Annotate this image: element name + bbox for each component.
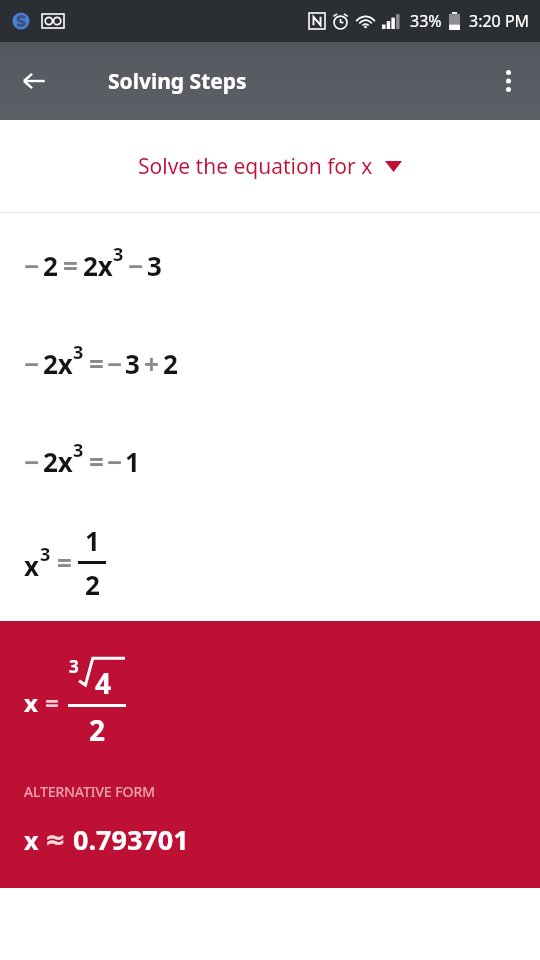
staticText: 3 xyxy=(147,248,162,283)
staticText: 2 xyxy=(163,346,178,381)
staticText: 3 xyxy=(73,340,84,365)
staticText: 3 xyxy=(40,542,51,567)
button[interactable]: Back xyxy=(6,53,62,109)
button[interactable]: More options xyxy=(480,53,536,109)
staticText: 2 xyxy=(85,567,100,602)
staticText: 2x xyxy=(43,346,73,381)
staticText: ≈ xyxy=(45,825,66,854)
staticText: = xyxy=(57,545,72,580)
staticText: Solve the equation for x xyxy=(138,152,373,181)
staticText: x xyxy=(24,686,38,719)
staticText: 3 xyxy=(125,346,140,381)
staticText: + xyxy=(144,346,159,381)
staticText: x xyxy=(24,548,40,583)
staticText: − xyxy=(107,444,123,479)
staticText: = xyxy=(45,686,59,719)
staticText: 2x xyxy=(83,248,113,283)
staticText: Solving Steps xyxy=(108,67,247,96)
staticText: ALTERNATIVE FORM xyxy=(24,782,155,801)
staticText: − xyxy=(24,444,40,479)
staticText: 3:20 PM xyxy=(469,10,530,32)
staticText: 3 xyxy=(69,655,79,678)
staticText: − xyxy=(128,248,144,283)
staticText: − xyxy=(24,248,40,283)
staticText: 1 xyxy=(125,444,140,479)
staticText: = xyxy=(63,248,78,283)
staticText: x xyxy=(24,823,39,857)
staticText: = xyxy=(89,444,104,479)
staticText: 4 xyxy=(95,664,112,702)
staticText: 3 xyxy=(113,242,124,267)
staticText: − xyxy=(24,346,40,381)
staticText: 33% xyxy=(410,10,442,32)
button[interactable]: Solve the equation for x xyxy=(0,120,540,212)
staticText: 2 xyxy=(43,248,58,283)
staticText: 3 xyxy=(73,438,84,463)
staticText: 1 xyxy=(85,523,100,558)
staticText: 2x xyxy=(43,444,73,479)
staticText: = xyxy=(89,346,104,381)
staticText: 0.793701 xyxy=(73,821,189,858)
staticText: 2 xyxy=(89,711,106,749)
staticText: − xyxy=(107,346,123,381)
